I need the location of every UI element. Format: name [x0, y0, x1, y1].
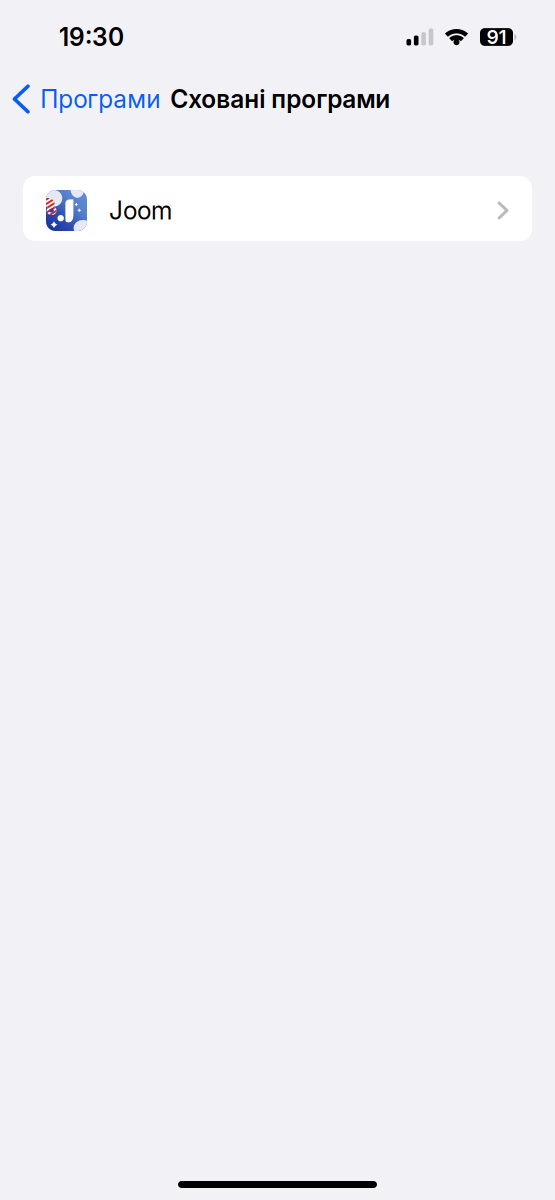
staticText: Сховані програми: [170, 84, 390, 114]
button[interactable]: Програми: [13, 80, 160, 118]
staticText: 19:30: [59, 22, 124, 52]
staticText: Програми: [40, 84, 160, 114]
staticText: 91: [486, 25, 506, 49]
staticText: Joom: [109, 196, 172, 225]
button[interactable]: Joom: [23, 176, 532, 241]
